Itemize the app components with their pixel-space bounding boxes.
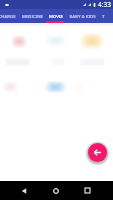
button[interactable]: Offer 5 [45, 81, 66, 93]
button[interactable]: Offer 1 [11, 35, 27, 48]
button[interactable]: Back [88, 143, 107, 162]
button[interactable]: MEDICINE [19, 9, 46, 23]
button[interactable]: RECHARGE [0, 9, 19, 23]
button[interactable]: Recents [77, 181, 97, 200]
button[interactable]: Home [46, 181, 66, 200]
button[interactable]: Offer 4 [2, 81, 19, 93]
staticText: 4:33 [98, 0, 111, 9]
button[interactable]: Back [14, 181, 34, 200]
staticText: RECHARGE [0, 13, 16, 19]
button[interactable]: BABY & KIDS [66, 9, 99, 23]
button[interactable]: Offer 3 [80, 33, 104, 49]
button[interactable]: TRAVEL [99, 9, 103, 23]
staticText: BABY & KIDS [69, 13, 96, 19]
button[interactable]: Offer 6 [76, 81, 84, 93]
staticText: MEDICINE [22, 13, 43, 19]
button[interactable]: Offer 2 [45, 35, 66, 46]
button[interactable]: MOVIE [46, 9, 66, 23]
staticText: MOVIE [49, 13, 63, 19]
